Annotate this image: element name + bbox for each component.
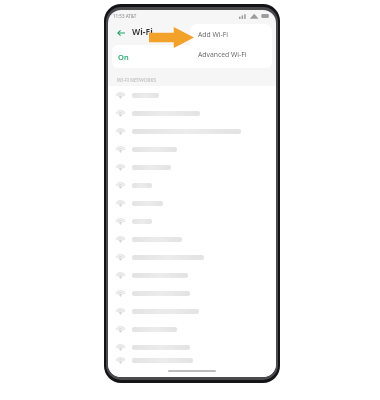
button[interactable] [108,176,276,194]
button[interactable]: Back [113,25,128,40]
button[interactable]: Advanced Wi-Fi [190,44,272,64]
button[interactable] [108,158,276,176]
button[interactable]: Add Wi-Fi [190,24,272,44]
staticText: WI-FI NETWORKS [117,77,157,84]
button[interactable] [108,302,276,320]
staticText: Add Wi-Fi [198,30,229,39]
button[interactable] [108,284,276,302]
button[interactable] [108,266,276,284]
button[interactable] [108,104,276,122]
button[interactable] [108,320,276,338]
staticText: Advanced Wi-Fi [198,50,247,59]
staticText: Wi-Fi [132,26,153,38]
button[interactable] [108,338,276,356]
button[interactable] [108,248,276,266]
button[interactable]: On [112,45,272,68]
button[interactable] [108,356,276,365]
staticText: On [118,52,129,62]
button[interactable] [108,86,276,104]
button[interactable] [108,212,276,230]
staticText: 11:53 AT&T [113,13,137,19]
button[interactable] [108,140,276,158]
button[interactable] [108,230,276,248]
button[interactable] [108,122,276,140]
button[interactable] [108,194,276,212]
